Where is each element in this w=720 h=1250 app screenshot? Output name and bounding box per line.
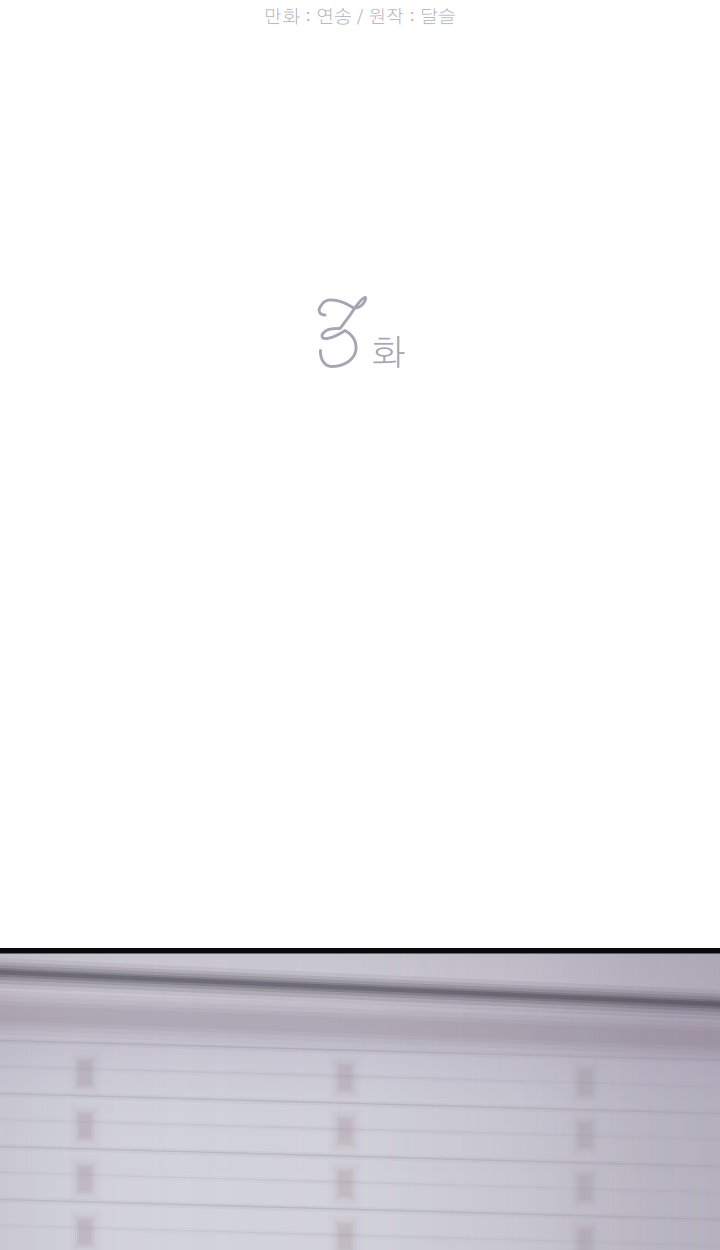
staticText: 만화 : 연송 / 원작 : 달슬 (264, 8, 456, 27)
staticText: 화 (371, 336, 405, 372)
